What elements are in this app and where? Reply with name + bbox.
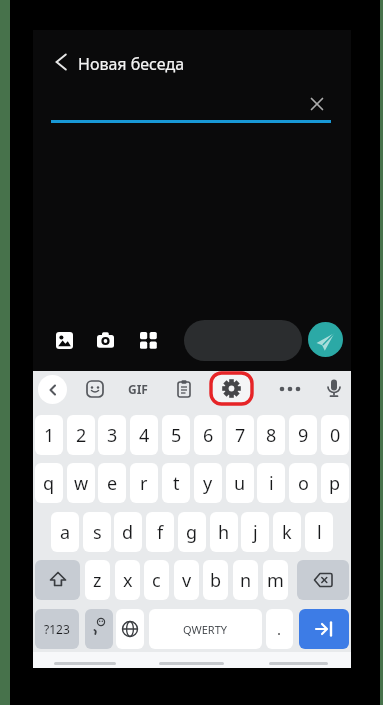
button[interactable]: m	[263, 560, 288, 600]
staticText: 5	[171, 423, 182, 448]
staticText: j	[253, 520, 258, 545]
staticText: 2	[76, 423, 87, 448]
staticText: h	[218, 520, 230, 545]
button[interactable]: j	[241, 512, 269, 552]
button[interactable]: 7	[226, 415, 254, 455]
button[interactable]: GIF	[123, 375, 153, 403]
staticText: o	[298, 471, 309, 496]
button[interactable]: k	[273, 512, 301, 552]
staticText: 0	[330, 423, 341, 448]
button[interactable]: 6	[194, 415, 222, 455]
button[interactable]	[297, 560, 349, 600]
staticText: m	[267, 568, 284, 593]
button[interactable]: 3	[98, 415, 126, 455]
button[interactable]: x	[115, 560, 140, 600]
button[interactable]: p	[321, 463, 349, 503]
staticText: d	[122, 520, 134, 545]
button[interactable]: f	[146, 512, 174, 552]
button[interactable]: 1	[35, 415, 63, 455]
button[interactable]: o	[289, 463, 317, 503]
staticText: y	[203, 471, 213, 496]
button[interactable]: a	[51, 512, 79, 552]
staticText: 9	[298, 423, 309, 448]
button[interactable]: r	[130, 463, 158, 503]
staticText: 8	[266, 423, 277, 448]
staticText: QWERTY	[183, 622, 228, 637]
button[interactable]	[35, 560, 80, 600]
button[interactable]	[41, 42, 81, 82]
button[interactable]: h	[210, 512, 238, 552]
staticText: a	[60, 520, 71, 545]
button[interactable]	[299, 86, 335, 122]
staticText: 6	[203, 423, 214, 448]
staticText: f	[157, 520, 164, 545]
staticText: 4	[139, 423, 150, 448]
staticText: b	[210, 568, 222, 593]
button[interactable]: e	[98, 463, 126, 503]
staticText: s	[93, 520, 102, 545]
button[interactable]: q	[35, 463, 63, 503]
button[interactable]: 2	[67, 415, 95, 455]
button[interactable]	[48, 324, 81, 357]
staticText: u	[234, 471, 246, 496]
button[interactable]: v	[174, 560, 199, 600]
button[interactable]: t	[162, 463, 190, 503]
staticText: c	[152, 568, 161, 593]
staticText: ?123	[44, 621, 70, 637]
staticText: 7	[235, 423, 246, 448]
button[interactable]: w	[67, 463, 95, 503]
staticText: t	[173, 471, 180, 496]
button[interactable]: QWERTY	[149, 609, 262, 649]
button[interactable]: g	[178, 512, 206, 552]
button[interactable]: d	[114, 512, 142, 552]
button[interactable]: 4	[130, 415, 158, 455]
staticText: r	[140, 471, 148, 496]
button[interactable]	[132, 324, 165, 357]
button[interactable]: l	[305, 512, 333, 552]
button[interactable]: 0	[321, 415, 349, 455]
button[interactable]	[276, 375, 304, 403]
button[interactable]	[184, 320, 302, 361]
staticText: 1	[44, 423, 55, 448]
button[interactable]: 8	[257, 415, 285, 455]
staticText: k	[282, 520, 292, 545]
button[interactable]: s	[83, 512, 111, 552]
button[interactable]	[81, 375, 109, 403]
button[interactable]: 5	[162, 415, 190, 455]
staticText: n	[240, 568, 252, 593]
staticText: l	[317, 520, 322, 545]
button[interactable]: z	[85, 560, 110, 600]
button[interactable]	[299, 609, 349, 649]
staticText: q	[43, 471, 55, 496]
button[interactable]: 9	[289, 415, 317, 455]
staticText: 3	[107, 423, 118, 448]
staticText: Новая беседа	[78, 53, 185, 75]
button[interactable]: b	[203, 560, 228, 600]
button[interactable]	[170, 375, 198, 403]
button[interactable]: y	[194, 463, 222, 503]
button[interactable]	[89, 324, 122, 357]
staticText: .	[277, 619, 282, 639]
button[interactable]: ?123	[35, 609, 79, 649]
staticText: GIF	[128, 381, 148, 397]
button[interactable]	[85, 609, 113, 649]
staticText: e	[107, 471, 118, 496]
button[interactable]: i	[257, 463, 285, 503]
button[interactable]	[320, 375, 348, 403]
staticText: z	[93, 568, 102, 593]
button[interactable]: .	[266, 609, 293, 649]
button[interactable]	[116, 609, 144, 649]
staticText: g	[186, 520, 198, 545]
staticText: v	[182, 568, 192, 593]
button[interactable]	[209, 371, 254, 406]
staticText: p	[329, 471, 341, 496]
button[interactable]: c	[144, 560, 169, 600]
button[interactable]	[38, 375, 67, 404]
staticText: w	[74, 471, 89, 496]
staticText: x	[123, 568, 133, 593]
staticText: i	[269, 471, 274, 496]
button[interactable]: u	[226, 463, 254, 503]
button[interactable]	[308, 322, 343, 357]
button[interactable]: n	[233, 560, 258, 600]
